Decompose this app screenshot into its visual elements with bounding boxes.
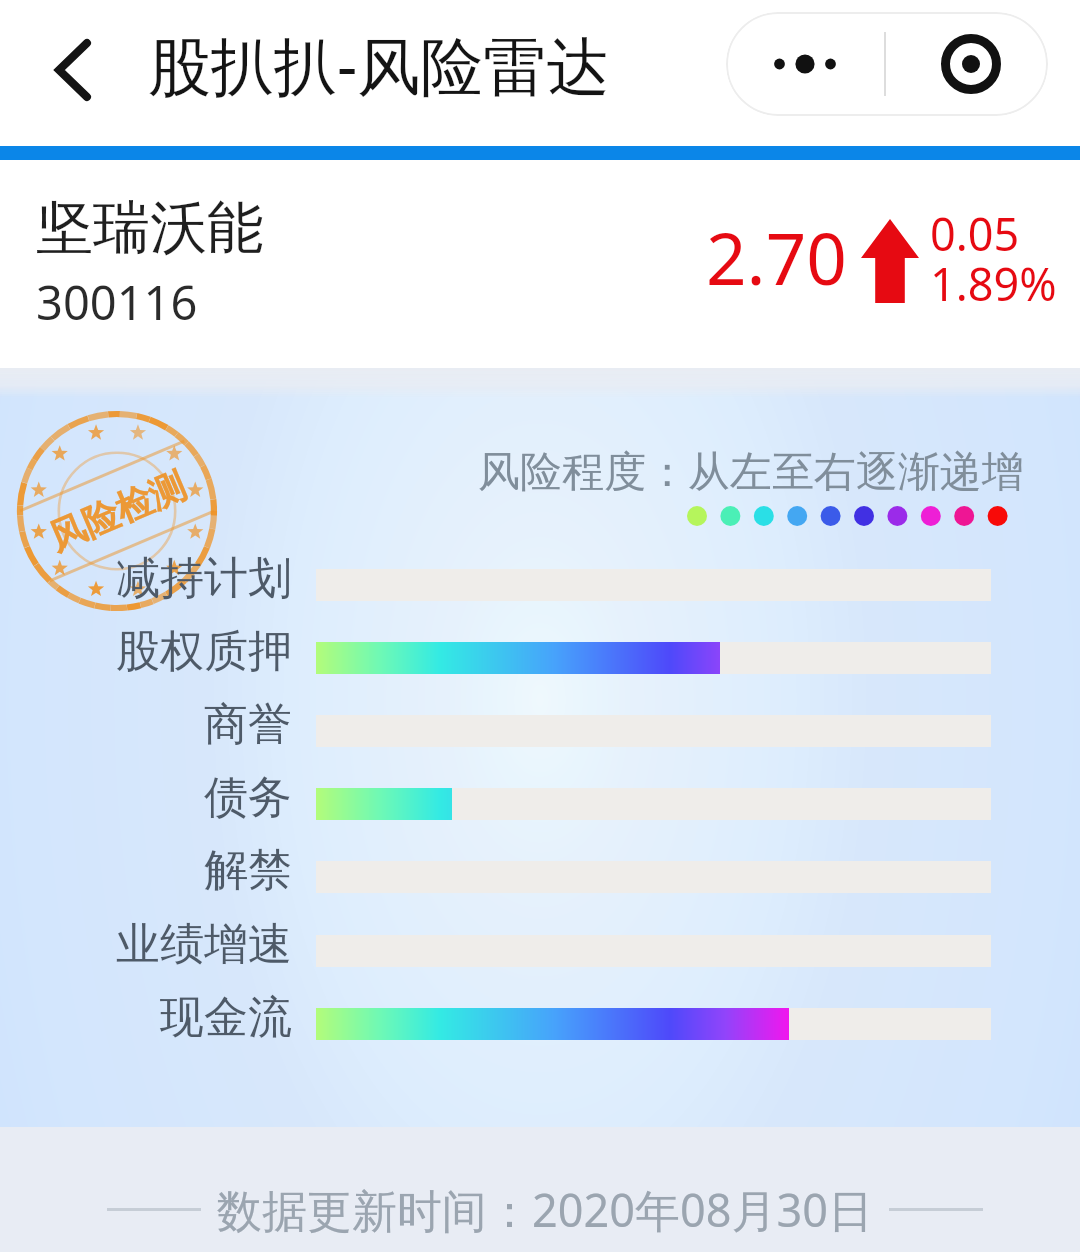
staticText: 2.70	[706, 209, 847, 306]
button[interactable]: 现金流	[43, 987, 991, 1060]
staticText: 0.05	[930, 203, 1020, 264]
staticText: 现金流	[43, 990, 292, 1045]
button[interactable]: 股权质押	[43, 621, 991, 694]
button[interactable]: More options	[726, 12, 884, 116]
staticText: 减持计划	[43, 551, 292, 606]
staticText: 股扒扒-风险雷达	[148, 22, 610, 108]
staticText: 300116	[36, 270, 198, 334]
staticText: 风险检测	[42, 463, 192, 560]
button[interactable]: Back	[13, 10, 133, 130]
button[interactable]: 业绩增速	[43, 914, 991, 987]
staticText: 商誉	[43, 697, 292, 752]
staticText: 1.89%	[930, 253, 1057, 314]
staticText: 债务	[43, 770, 292, 825]
staticText: 业绩增速	[43, 917, 292, 972]
staticText: 风险程度：从左至右逐渐递增	[478, 446, 1024, 499]
button[interactable]: 债务	[43, 767, 991, 840]
staticText: 解禁	[43, 843, 292, 898]
button[interactable]: 商誉	[43, 694, 991, 767]
button[interactable]: 解禁	[43, 840, 991, 913]
staticText: 股权质押	[43, 624, 292, 679]
button[interactable]: Close mini program	[886, 12, 1048, 116]
button[interactable]: 减持计划	[43, 548, 991, 621]
staticText: 坚瑞沃能	[36, 192, 264, 264]
staticText: 数据更新时间：2020年08月30日	[217, 1179, 873, 1240]
